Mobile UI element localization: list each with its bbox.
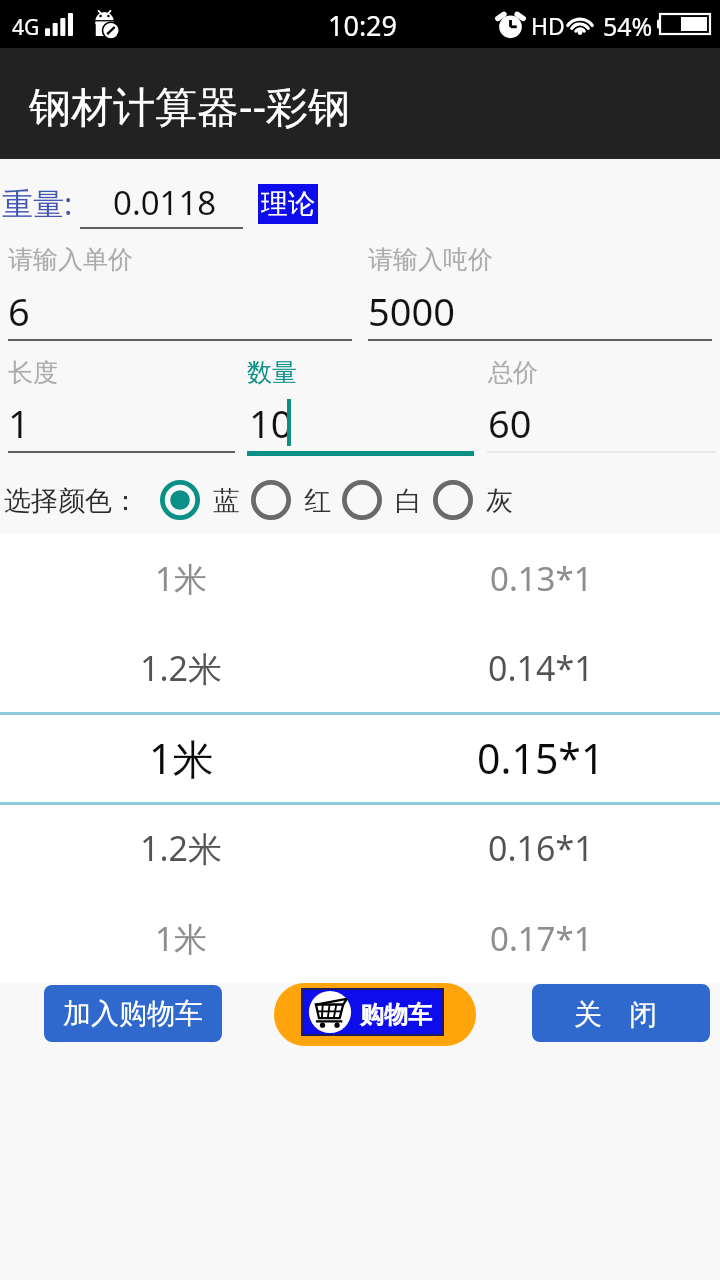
button[interactable]: 1.2米 (0, 623, 720, 713)
staticText: 请输入吨价 (368, 244, 493, 275)
staticText: 10 (249, 397, 293, 449)
staticText: 0.17*1 (490, 916, 593, 961)
staticText: 0.14*1 (488, 645, 594, 691)
button[interactable]: 购物车 (274, 983, 476, 1046)
staticText: 6 (8, 285, 30, 337)
staticText: 54% (603, 9, 653, 43)
staticText: 5000 (368, 285, 455, 337)
staticText: 钢材计算器--彩钢 (29, 77, 351, 134)
staticText: 总价 (488, 357, 538, 388)
staticText: 蓝 (213, 484, 240, 518)
button[interactable]: 关 闭 (532, 984, 710, 1042)
staticText: 长度 (8, 357, 58, 388)
button[interactable]: 白 (340, 478, 384, 522)
button[interactable]: 灰 (431, 478, 475, 522)
button[interactable]: 1米 (0, 893, 720, 983)
staticText: 1米 (155, 916, 207, 961)
staticText: 1.2米 (140, 645, 223, 691)
button[interactable]: 理论 (258, 184, 318, 224)
staticText: 0.15*1 (477, 730, 605, 786)
staticText: 1 (8, 397, 30, 449)
button[interactable]: 加入购物车 (44, 985, 222, 1042)
staticText: 重量: (2, 182, 73, 224)
staticText: 数量 (247, 357, 297, 388)
staticText: 60 (488, 397, 532, 449)
staticText: 0.16*1 (488, 825, 594, 871)
staticText: 1米 (149, 730, 214, 786)
staticText: 10:29 (328, 7, 398, 44)
button[interactable]: 1米 (0, 533, 720, 623)
staticText: 关 闭 (574, 994, 668, 1032)
staticText: 0.0118 (113, 180, 217, 225)
button[interactable]: 红 (249, 478, 293, 522)
staticText: 加入购物车 (63, 996, 203, 1031)
staticText: 请输入单价 (8, 244, 133, 275)
staticText: 灰 (486, 484, 513, 518)
staticText: HD (531, 10, 565, 41)
staticText: 白 (395, 484, 422, 518)
button[interactable]: 蓝 (158, 478, 202, 522)
staticText: 1.2米 (140, 825, 223, 871)
button[interactable]: 1米 (0, 713, 720, 803)
staticText: 4G (12, 13, 40, 42)
button[interactable]: 1.2米 (0, 803, 720, 893)
staticText: 0.13*1 (490, 556, 593, 601)
staticText: 红 (304, 484, 331, 518)
staticText: 购物车 (360, 1000, 432, 1030)
staticText: 理论 (261, 187, 315, 221)
staticText: 选择颜色： (4, 484, 139, 518)
staticText: 1米 (155, 556, 207, 601)
